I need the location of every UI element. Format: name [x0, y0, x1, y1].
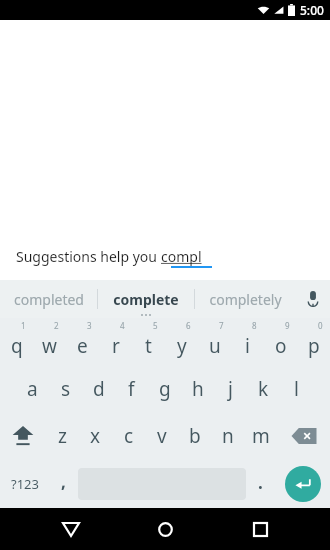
button[interactable]: 1: [0, 318, 33, 365]
button[interactable]: j: [214, 365, 247, 412]
button[interactable]: 6: [165, 318, 198, 365]
staticText: g: [159, 376, 171, 402]
staticText: 2: [54, 320, 59, 331]
button[interactable]: k: [247, 365, 280, 412]
staticText: .: [258, 471, 263, 494]
staticText: z: [58, 423, 67, 449]
staticText: i: [245, 333, 250, 359]
staticText: y: [177, 333, 187, 359]
button[interactable]: z: [46, 412, 79, 460]
staticText: 3: [87, 320, 92, 331]
button[interactable]: v: [145, 412, 178, 460]
button[interactable]: m: [244, 412, 277, 460]
staticText: 5:00: [300, 2, 324, 18]
button[interactable]: x: [79, 412, 112, 460]
button[interactable]: d: [82, 365, 115, 412]
staticText: t: [145, 333, 152, 359]
button[interactable]: Shift: [0, 412, 46, 460]
staticText: compl: [161, 247, 202, 266]
button[interactable]: Home: [141, 508, 189, 550]
button[interactable]: n: [211, 412, 244, 460]
button[interactable]: Recent apps: [236, 508, 284, 550]
staticText: 5: [153, 320, 158, 331]
staticText: 8: [252, 320, 257, 331]
button[interactable]: complete: [98, 280, 194, 318]
button[interactable]: 4: [99, 318, 132, 365]
staticText: k: [258, 376, 269, 402]
button[interactable]: Voice input: [296, 280, 330, 318]
button[interactable]: 0: [297, 318, 330, 365]
staticText: l: [294, 376, 299, 402]
staticText: u: [209, 333, 221, 359]
staticText: r: [112, 333, 120, 359]
staticText: completely: [209, 290, 282, 309]
staticText: ,: [61, 470, 66, 493]
button[interactable]: Back: [47, 508, 95, 550]
staticText: d: [93, 376, 105, 402]
button[interactable]: h: [181, 365, 214, 412]
staticText: m: [252, 423, 270, 449]
staticText: Suggestions help you: [16, 247, 161, 266]
staticText: completed: [14, 290, 84, 309]
staticText: w: [42, 333, 57, 359]
button[interactable]: s: [49, 365, 82, 412]
staticText: a: [27, 376, 38, 402]
staticText: c: [124, 423, 134, 449]
staticText: 7: [219, 320, 224, 331]
staticText: 4: [120, 320, 125, 331]
staticText: f: [128, 376, 135, 402]
staticText: x: [90, 423, 101, 449]
button[interactable]: l: [280, 365, 313, 412]
staticText: 9: [285, 320, 290, 331]
button[interactable]: 3: [66, 318, 99, 365]
button[interactable]: .: [246, 460, 275, 508]
button[interactable]: 2: [33, 318, 66, 365]
button[interactable]: a: [16, 365, 49, 412]
button[interactable]: 5: [132, 318, 165, 365]
button[interactable]: 7: [198, 318, 231, 365]
staticText: p: [308, 333, 320, 359]
button[interactable]: c: [112, 412, 145, 460]
button[interactable]: ,: [49, 460, 78, 508]
staticText: complete: [113, 290, 179, 309]
staticText: h: [192, 376, 204, 402]
staticText: 1: [21, 320, 26, 331]
staticText: 0: [318, 320, 323, 331]
button[interactable]: b: [178, 412, 211, 460]
button[interactable]: ?123: [0, 460, 49, 508]
staticText: v: [157, 423, 167, 449]
button[interactable]: completed: [0, 280, 97, 318]
button[interactable]: Backspace: [277, 412, 330, 460]
staticText: o: [275, 333, 287, 359]
staticText: e: [77, 333, 88, 359]
button[interactable]: 9: [264, 318, 297, 365]
staticText: s: [61, 376, 71, 402]
staticText: n: [222, 423, 234, 449]
button[interactable]: Enter: [275, 460, 330, 508]
staticText: ?123: [11, 475, 39, 493]
button[interactable]: completely: [195, 280, 296, 318]
staticText: 6: [186, 320, 191, 331]
button[interactable]: f: [115, 365, 148, 412]
button[interactable]: g: [148, 365, 181, 412]
staticText: j: [228, 376, 233, 402]
staticText: b: [189, 423, 201, 449]
staticText: q: [11, 333, 23, 359]
button[interactable]: 8: [231, 318, 264, 365]
